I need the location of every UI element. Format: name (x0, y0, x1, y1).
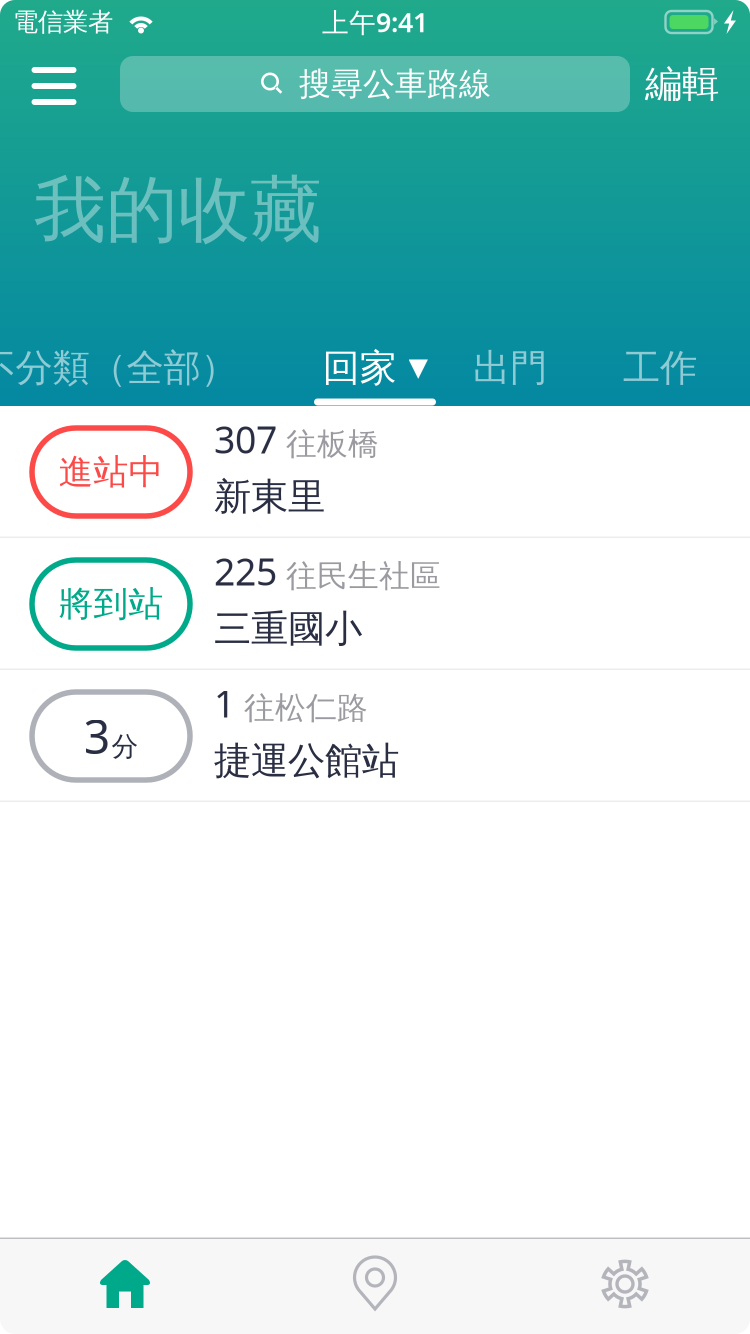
button[interactable]: Menu (0, 44, 108, 128)
staticText: 搜尋公車路線 (299, 64, 491, 104)
button[interactable]: Nearby (250, 1236, 500, 1331)
button[interactable]: 搜尋公車路線 (120, 56, 630, 112)
button[interactable]: 不分類（全部） (0, 336, 237, 400)
staticText: 往民生社區 (286, 557, 441, 595)
staticText: 上午9:41 (322, 4, 428, 40)
button[interactable]: 進站中 (0, 406, 750, 536)
staticText: 編輯 (645, 61, 719, 107)
button[interactable]: 工作 (623, 336, 697, 400)
staticText: 新東里 (214, 474, 325, 520)
button[interactable]: 將到站 (0, 538, 750, 668)
staticText: 225 (214, 546, 277, 596)
staticText: 工作 (623, 345, 697, 391)
button[interactable]: Settings (500, 1236, 750, 1331)
button[interactable]: 3 (0, 670, 750, 800)
staticText: 3 (83, 705, 110, 767)
staticText: 三重國小 (214, 606, 362, 652)
button[interactable]: Home (0, 1236, 250, 1331)
staticText: 我的收藏 (34, 166, 322, 254)
staticText: ▼ (408, 353, 427, 381)
staticText: 307 (214, 414, 277, 464)
staticText: 不分類（全部） (0, 345, 237, 391)
staticText: 回家 (322, 345, 396, 391)
button[interactable]: 編輯 (627, 49, 737, 119)
staticText: 往板橋 (286, 425, 379, 463)
staticText: 出門 (473, 345, 547, 391)
staticText: 分 (111, 730, 138, 763)
staticText: 往松仁路 (244, 689, 368, 727)
staticText: 電信業者 (13, 6, 113, 37)
staticText: 1 (214, 678, 235, 728)
staticText: 將到站 (58, 583, 163, 625)
staticText: 捷運公館站 (214, 738, 399, 784)
button[interactable]: 回家 (322, 336, 427, 400)
button[interactable]: 出門 (473, 336, 547, 400)
staticText: 進站中 (58, 451, 163, 493)
